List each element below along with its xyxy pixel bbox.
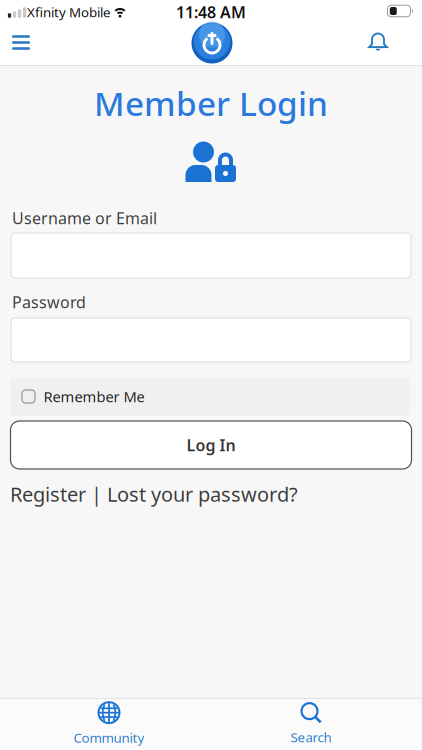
button[interactable] xyxy=(4,26,38,58)
staticText: Member Login xyxy=(94,81,328,125)
staticText: Username or Email xyxy=(12,207,157,229)
button[interactable]: Register xyxy=(10,481,86,507)
button[interactable]: Community xyxy=(54,698,164,750)
staticText: Remember Me xyxy=(43,387,144,406)
button[interactable] xyxy=(11,233,411,278)
staticText: 11:48 AM xyxy=(176,1,246,23)
staticText: Community xyxy=(73,729,144,746)
button[interactable]: Remember Me xyxy=(11,377,410,415)
staticText: Lost your password? xyxy=(107,481,298,507)
button[interactable]: Search xyxy=(256,698,366,750)
staticText: Xfinity Mobile xyxy=(27,3,111,21)
button[interactable] xyxy=(362,26,394,58)
staticText: | xyxy=(86,481,107,507)
staticText: Register xyxy=(10,481,86,507)
button[interactable] xyxy=(191,22,233,64)
button[interactable] xyxy=(11,318,411,362)
button[interactable]: Log In xyxy=(10,421,411,469)
staticText: Password xyxy=(12,291,86,313)
staticText: Log In xyxy=(186,434,235,456)
button[interactable]: Lost your password? xyxy=(107,481,298,507)
staticText: Search xyxy=(290,728,331,746)
